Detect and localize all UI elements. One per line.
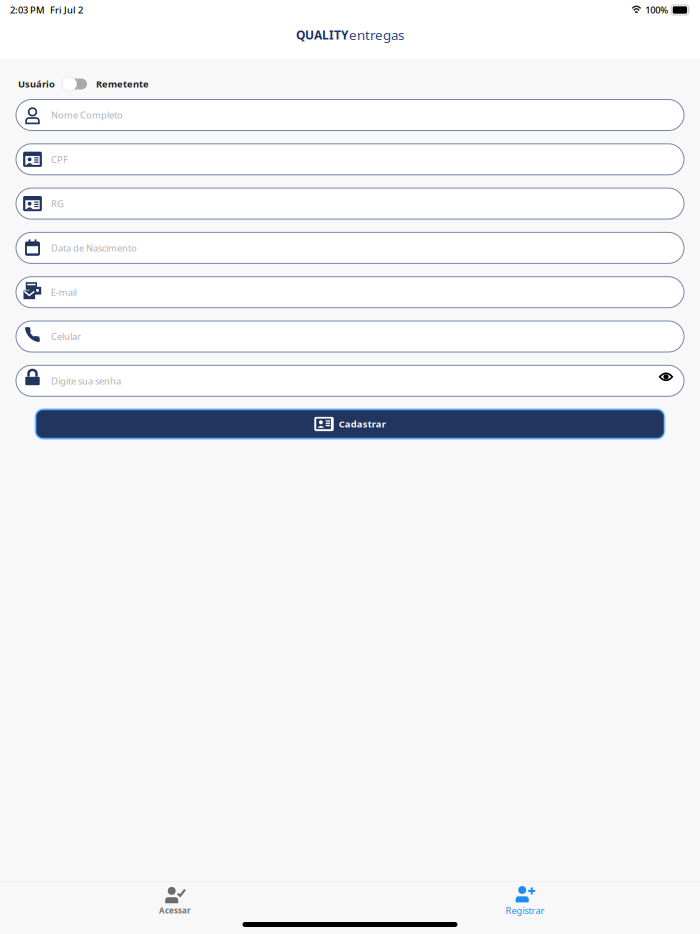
staticText: Digite sua senha xyxy=(51,375,121,387)
button[interactable]: Registrar xyxy=(350,884,700,918)
staticText: Acessar xyxy=(159,905,191,916)
staticText: 100% xyxy=(645,4,668,16)
staticText: Nome Completo xyxy=(51,109,123,121)
button[interactable]: CPF xyxy=(16,144,684,175)
staticText: entregas xyxy=(349,26,404,44)
button[interactable]: E-mail xyxy=(16,277,684,308)
button[interactable]: Nome Completo xyxy=(16,99,684,130)
staticText: RG xyxy=(51,197,64,210)
staticText: E-mail xyxy=(51,286,77,298)
staticText: Data de Nascimento xyxy=(51,242,137,254)
button[interactable]: Celular xyxy=(16,321,684,352)
staticText: Fri Jul 2 xyxy=(50,4,83,16)
staticText: QUALITY xyxy=(296,27,349,43)
button[interactable]: Mostrar senha xyxy=(655,370,677,392)
staticText: Registrar xyxy=(505,904,544,916)
staticText: CPF xyxy=(51,153,68,165)
button[interactable]: Acessar xyxy=(0,884,350,918)
staticText: Usuário xyxy=(18,78,55,90)
staticText: Remetente xyxy=(96,78,149,90)
button[interactable]: Data de Nascimento xyxy=(16,232,684,263)
button[interactable]: Digite sua senha xyxy=(16,365,684,396)
staticText: Celular xyxy=(51,330,81,343)
button[interactable]: RG xyxy=(16,188,684,219)
staticText: 2:03 PM xyxy=(10,4,45,16)
staticText: Cadastrar xyxy=(339,418,386,430)
button[interactable]: Cadastrar xyxy=(35,409,665,439)
